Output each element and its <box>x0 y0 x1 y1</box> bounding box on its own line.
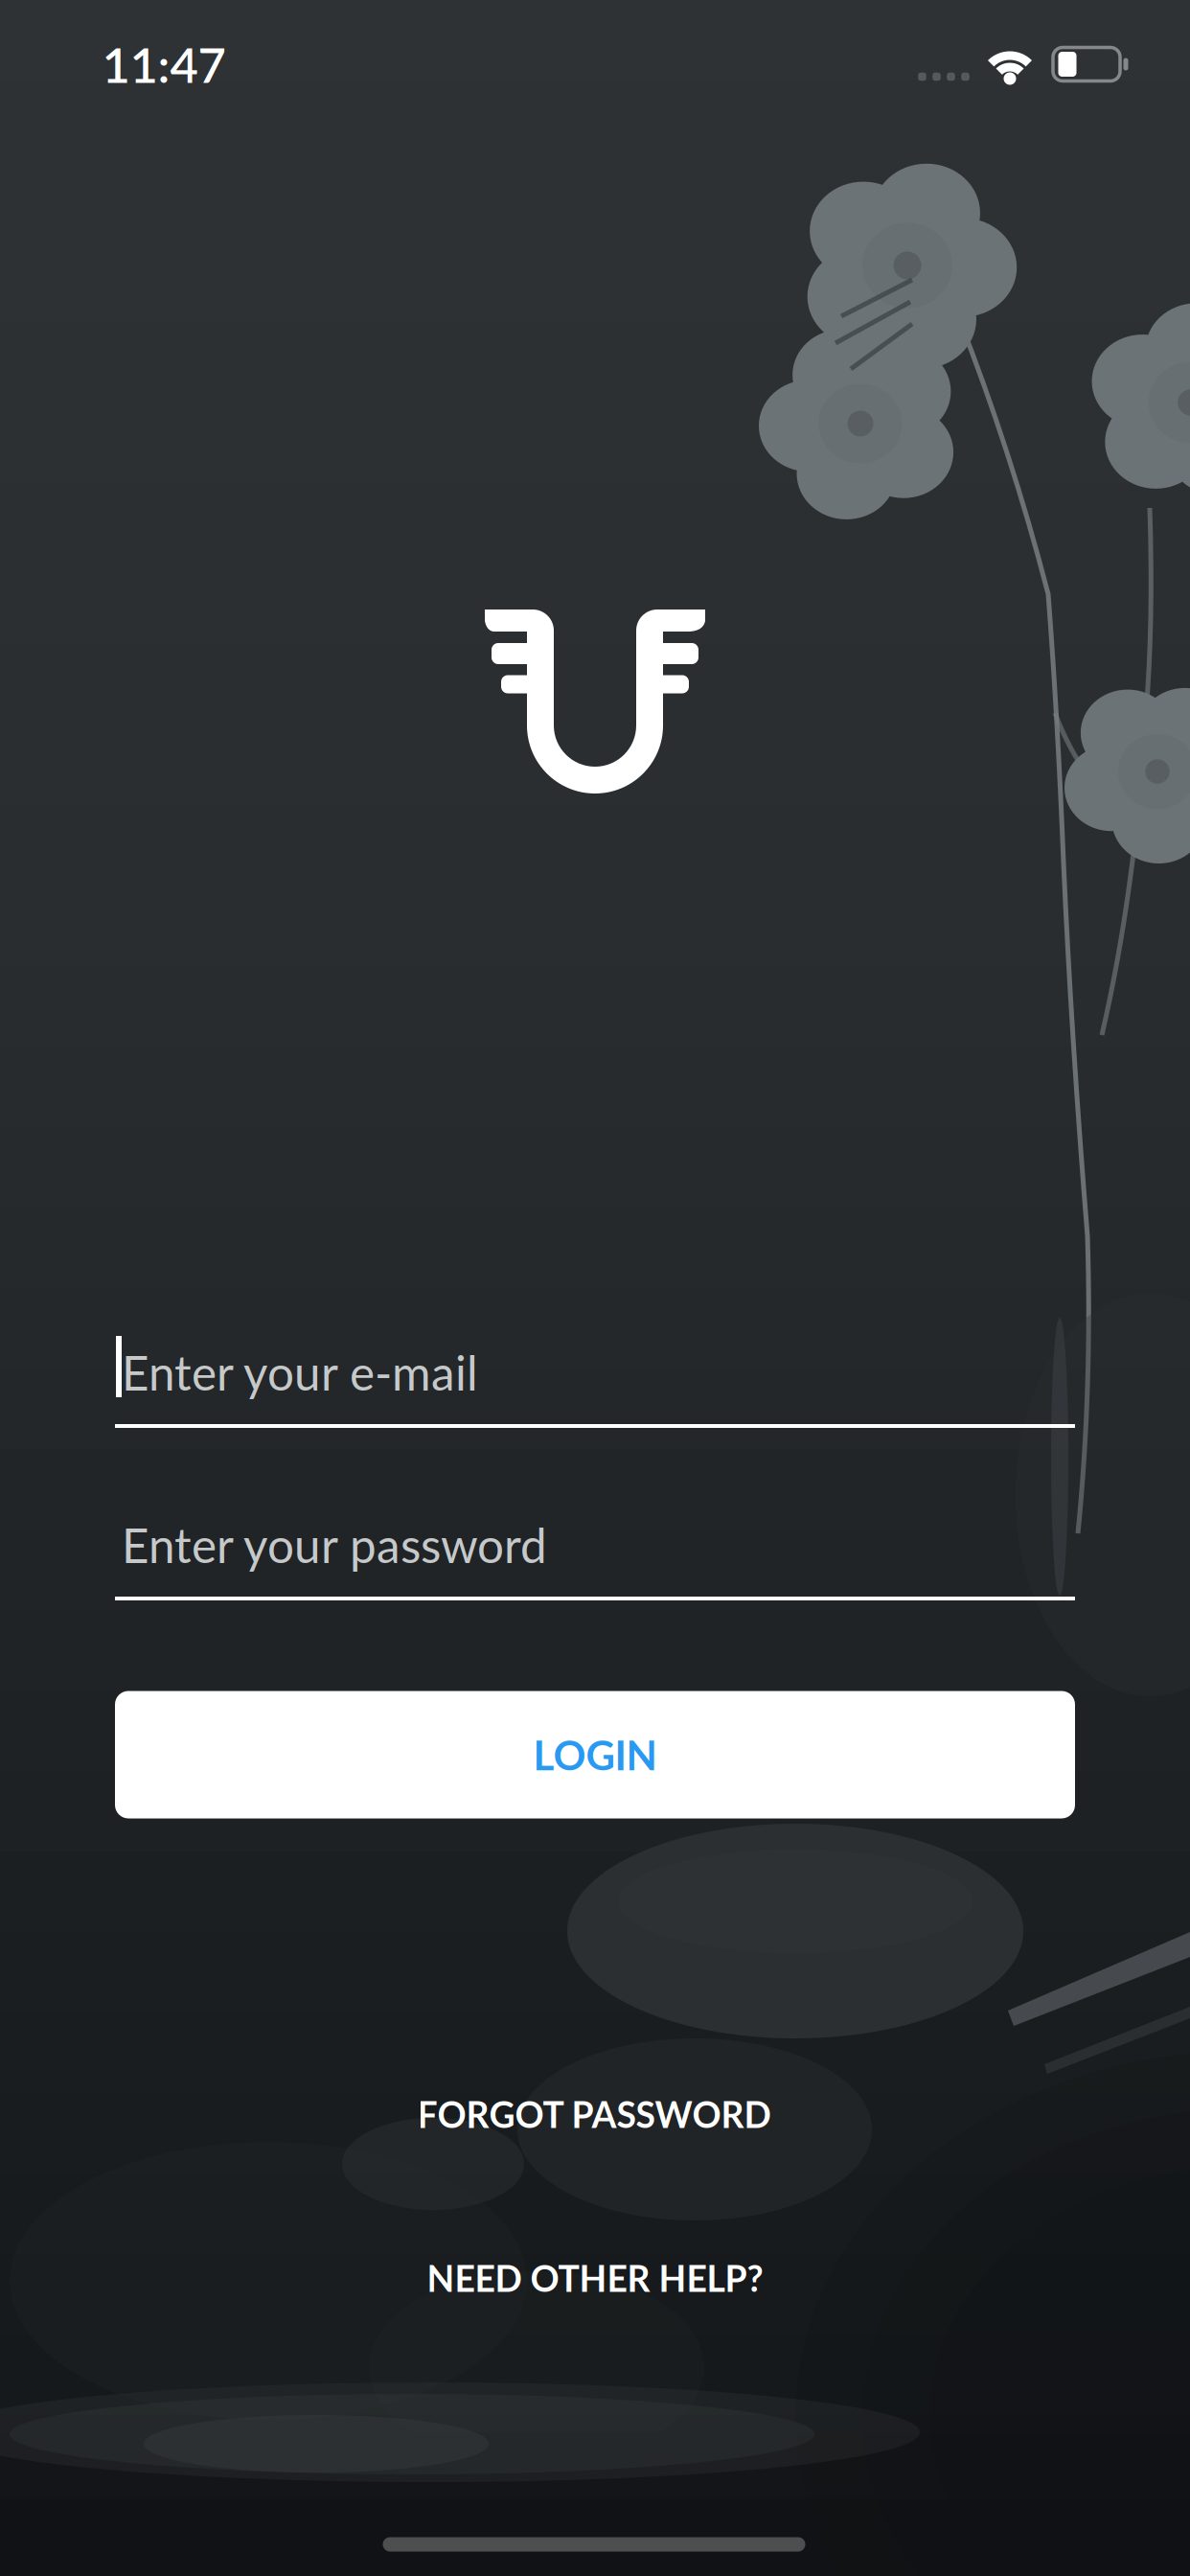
staticText: Enter your e-mail <box>122 1344 478 1401</box>
button[interactable]: FORGOT PASSWORD <box>398 2079 790 2149</box>
button[interactable]: Enter your password <box>115 1487 1075 1606</box>
staticText: LOGIN <box>533 1731 657 1779</box>
staticText: FORGOT PASSWORD <box>417 2093 771 2136</box>
button[interactable]: LOGIN <box>115 1691 1075 1818</box>
staticText: NEED OTHER HELP? <box>427 2256 763 2299</box>
staticText: 11:47 <box>102 35 226 93</box>
staticText: Enter your password <box>122 1516 547 1573</box>
button[interactable]: Enter your e-mail <box>115 1315 1075 1434</box>
button[interactable]: NEED OTHER HELP? <box>408 2243 782 2313</box>
